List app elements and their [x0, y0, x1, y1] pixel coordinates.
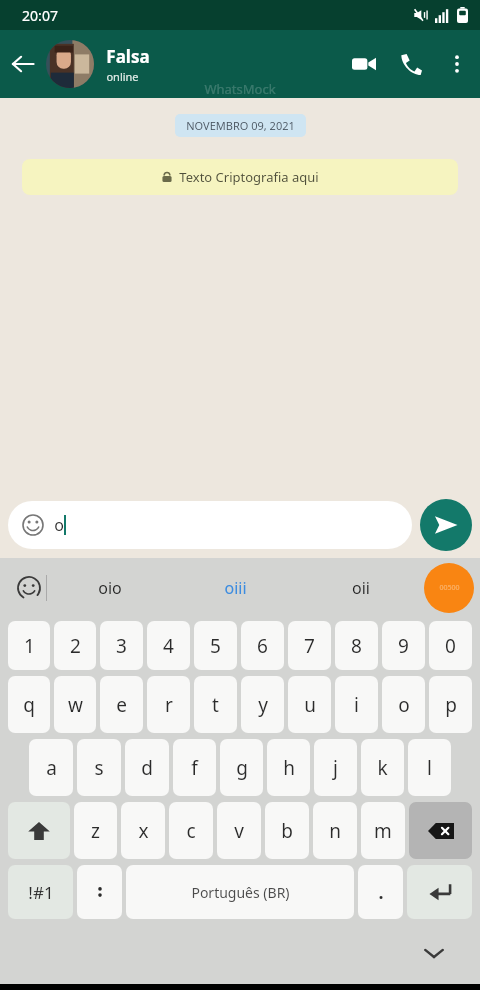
button[interactable]: oii — [298, 558, 424, 618]
staticText: Texto Criptografia aqui — [179, 168, 319, 186]
staticText: o — [398, 692, 410, 718]
button[interactable]: n — [313, 802, 357, 859]
button[interactable]: 1 — [8, 621, 50, 670]
staticText: 6 — [257, 633, 268, 659]
button[interactable]: g — [220, 739, 263, 796]
button[interactable]: m — [361, 802, 405, 859]
button[interactable]: t — [194, 676, 237, 733]
staticText: b — [281, 818, 293, 844]
staticText: g — [236, 755, 248, 781]
button[interactable]: f — [173, 739, 216, 796]
staticText: 1 — [24, 633, 35, 659]
button[interactable]: 7 — [288, 621, 331, 670]
staticText: u — [304, 692, 316, 718]
staticText: l — [427, 755, 432, 781]
staticText: f — [191, 755, 198, 781]
staticText: z — [91, 818, 100, 844]
staticText: oio — [98, 577, 122, 599]
staticText: 00500 — [439, 583, 460, 593]
button[interactable]: Hide keyboard — [414, 933, 454, 973]
button[interactable]: 8 — [335, 621, 378, 670]
button[interactable]: o — [382, 676, 425, 733]
button[interactable]: Sticker store — [424, 563, 474, 613]
button[interactable]: Backspace — [409, 802, 472, 859]
button[interactable]: b — [265, 802, 309, 859]
button[interactable]: o — [8, 501, 412, 549]
button[interactable]: 3 — [100, 621, 143, 670]
button[interactable]: d — [125, 739, 169, 796]
button[interactable]: 6 — [241, 621, 284, 670]
button[interactable]: Video call — [340, 40, 388, 88]
staticText: . — [378, 880, 384, 905]
button[interactable]: l — [408, 739, 451, 796]
button[interactable]: !#1 — [8, 865, 73, 919]
staticText: n — [329, 818, 341, 844]
staticText: 9 — [398, 633, 409, 659]
button[interactable]: k — [361, 739, 404, 796]
button[interactable]: v — [217, 802, 261, 859]
button[interactable]: Send — [420, 499, 472, 551]
staticText: i — [354, 692, 359, 718]
button[interactable]: More options — [434, 41, 480, 87]
staticText: j — [333, 755, 338, 781]
button[interactable]: Keyboard settings — [77, 865, 122, 919]
staticText: k — [377, 755, 388, 781]
staticText: s — [94, 755, 104, 781]
button[interactable]: 2 — [54, 621, 96, 670]
staticText: m — [374, 818, 392, 844]
staticText: r — [165, 692, 173, 718]
staticText: d — [141, 755, 153, 781]
button[interactable]: c — [169, 802, 213, 859]
button[interactable]: . — [358, 865, 403, 919]
staticText: online — [106, 69, 139, 84]
button[interactable]: p — [429, 676, 472, 733]
staticText: c — [186, 818, 196, 844]
staticText: w — [68, 692, 83, 718]
button[interactable]: a — [29, 739, 73, 796]
staticText: 5 — [210, 633, 221, 659]
button[interactable]: 4 — [147, 621, 190, 670]
staticText: v — [234, 818, 244, 844]
staticText: WhatsMock — [204, 80, 276, 98]
staticText: o — [54, 514, 64, 536]
button[interactable]: 9 — [382, 621, 425, 670]
button[interactable]: Shift — [8, 802, 70, 859]
staticText: q — [23, 692, 35, 718]
button[interactable]: 5 — [194, 621, 237, 670]
staticText: x — [138, 818, 149, 844]
button[interactable]: q — [8, 676, 50, 733]
button[interactable]: Português (BR) — [126, 865, 354, 919]
button[interactable]: u — [288, 676, 331, 733]
button[interactable]: s — [77, 739, 121, 796]
button[interactable]: Enter — [407, 865, 472, 919]
staticText: 7 — [304, 633, 315, 659]
staticText: 20:07 — [22, 6, 58, 25]
button[interactable]: x — [121, 802, 165, 859]
button[interactable]: Falsa — [46, 30, 340, 98]
button[interactable]: i — [335, 676, 378, 733]
button[interactable]: 0 — [429, 621, 472, 670]
staticText: Português (BR) — [191, 883, 290, 902]
button[interactable]: oiii — [172, 558, 298, 618]
staticText: 2 — [70, 633, 81, 659]
staticText: p — [445, 692, 457, 718]
staticText: h — [283, 755, 295, 781]
button[interactable]: Call — [388, 41, 434, 87]
staticText: t — [212, 692, 219, 718]
button[interactable]: e — [100, 676, 143, 733]
button[interactable]: Back — [0, 41, 46, 87]
button[interactable]: h — [267, 739, 310, 796]
button[interactable]: y — [241, 676, 284, 733]
button[interactable]: z — [74, 802, 117, 859]
staticText: 3 — [116, 633, 127, 659]
button[interactable]: oio — [47, 558, 172, 618]
button[interactable]: j — [314, 739, 357, 796]
button[interactable]: r — [147, 676, 190, 733]
button[interactable]: Emoji suggestions — [12, 571, 46, 605]
staticText: Falsa — [106, 45, 150, 68]
staticText: y — [258, 692, 268, 718]
staticText: 0 — [445, 633, 456, 659]
staticText: oiii — [224, 577, 247, 599]
staticText: 8 — [351, 633, 362, 659]
button[interactable]: w — [54, 676, 96, 733]
